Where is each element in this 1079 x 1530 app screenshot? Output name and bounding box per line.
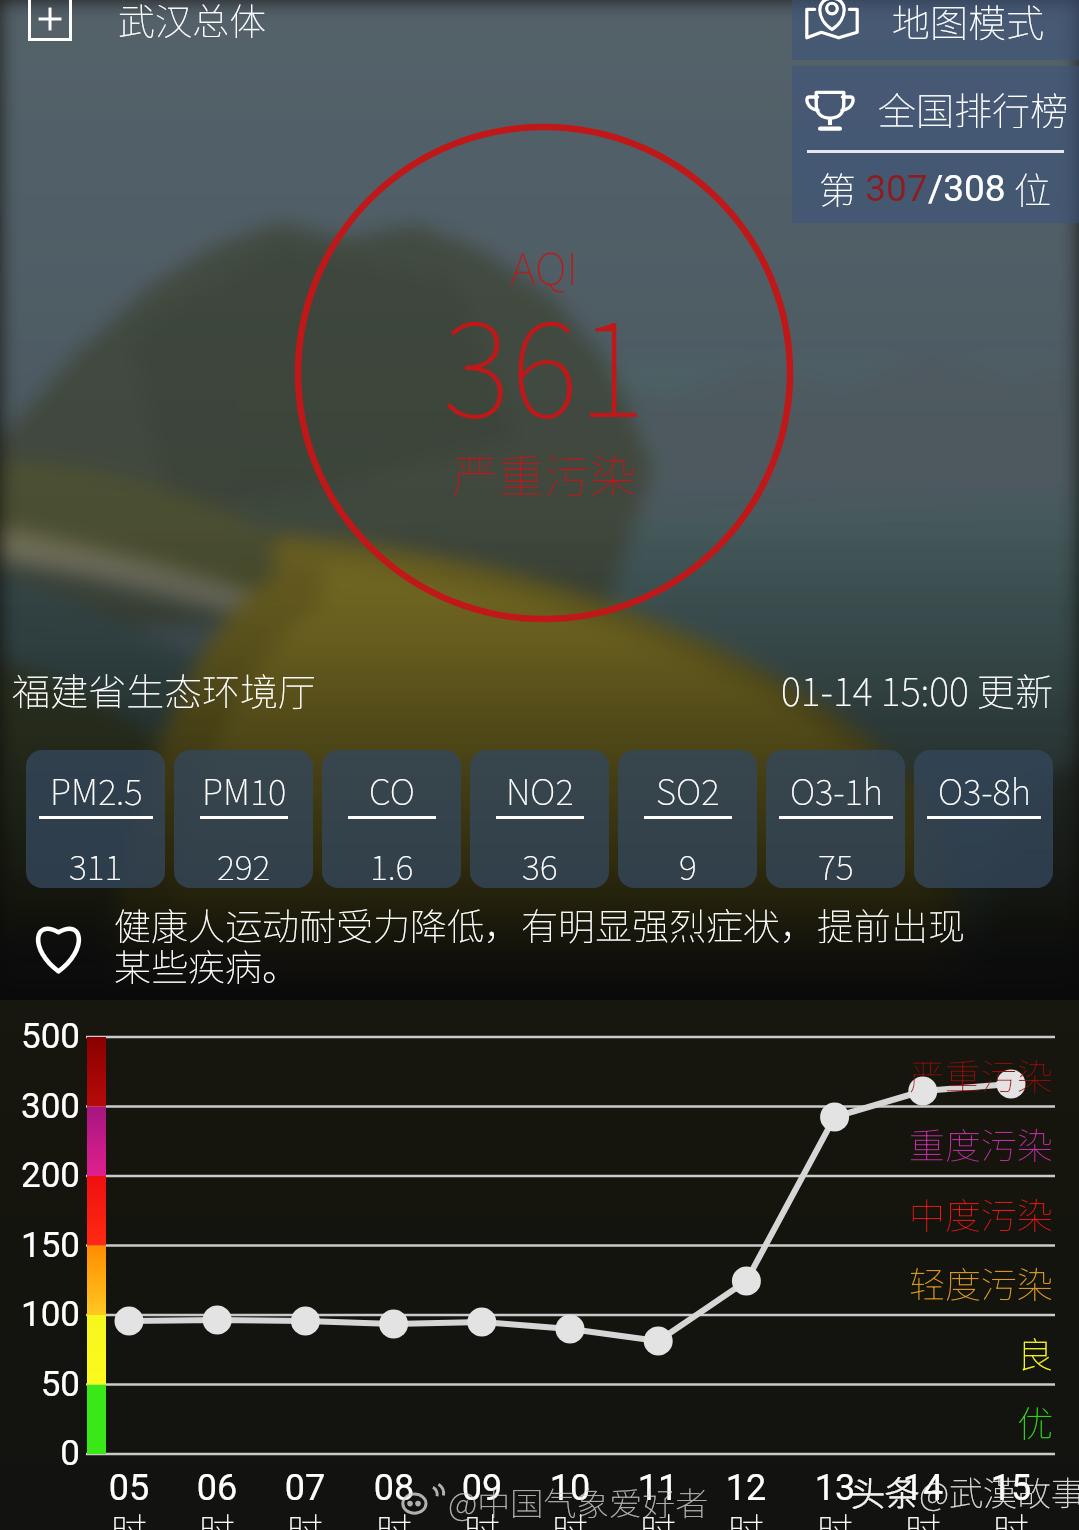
- other: Map mode: [804, 1, 860, 47]
- button[interactable]: Add city: [28, 0, 266, 48]
- staticText: 08: [350, 1467, 438, 1509]
- staticText: 中度污染: [0, 1187, 1053, 1239]
- staticText: 时: [173, 1502, 261, 1530]
- staticText: 时: [261, 1502, 349, 1530]
- staticText: 361: [295, 266, 793, 454]
- staticText: 36: [522, 841, 558, 888]
- staticText: 时: [967, 1502, 1055, 1530]
- staticText: O3-1h: [790, 764, 883, 815]
- staticText: @武漢故事: [919, 1467, 1079, 1516]
- staticText: 头条: [851, 1467, 919, 1516]
- staticText: 严重污染: [0, 1048, 1053, 1100]
- staticText: 时: [526, 1502, 614, 1530]
- staticText: 重度污染: [0, 1117, 1053, 1169]
- staticText: 福建省生态环境厅: [12, 662, 317, 717]
- staticText: CO: [369, 764, 415, 815]
- other: Add city: [28, 0, 72, 41]
- staticText: PM2.5: [50, 764, 143, 815]
- staticText: 武汉总体: [118, 0, 266, 46]
- staticText: 时: [350, 1502, 438, 1530]
- staticText: 12: [702, 1467, 790, 1509]
- staticText: O3-8h: [938, 764, 1031, 815]
- button[interactable]: CO: [322, 750, 461, 888]
- staticText: 11: [614, 1467, 702, 1509]
- staticText: 位: [1006, 161, 1052, 215]
- staticText: 01-14 15:00 更新: [781, 662, 1054, 717]
- staticText: 15: [967, 1467, 1055, 1509]
- staticText: 时: [702, 1502, 790, 1530]
- staticText: 500: [0, 1016, 80, 1057]
- staticText: 时: [85, 1502, 173, 1530]
- staticText: 时: [438, 1502, 526, 1530]
- staticText: 292: [217, 841, 271, 888]
- staticText: 时: [879, 1502, 967, 1530]
- staticText: 良: [0, 1326, 1053, 1378]
- staticText: 严重污染: [295, 440, 793, 507]
- staticText: 307: [856, 167, 928, 210]
- staticText: 地图模式: [892, 0, 1045, 48]
- staticText: 100: [0, 1294, 80, 1335]
- staticText: 05: [85, 1467, 173, 1509]
- staticText: 14: [879, 1467, 967, 1509]
- button[interactable]: O3-1h: [766, 750, 905, 888]
- staticText: 150: [0, 1225, 80, 1266]
- staticText: 75: [818, 841, 854, 888]
- button[interactable]: PM2.5: [26, 750, 165, 888]
- staticText: 06: [173, 1467, 261, 1509]
- staticText: @中国气象爱好者: [448, 1478, 709, 1526]
- staticText: /308: [928, 167, 1006, 210]
- staticText: 311: [69, 841, 123, 888]
- button[interactable]: Map mode: [792, 0, 1079, 60]
- staticText: 轻度污染: [0, 1256, 1053, 1308]
- button[interactable]: NO2: [470, 750, 609, 888]
- staticText: 07: [261, 1467, 349, 1509]
- staticText: 全国排行榜: [878, 81, 1069, 136]
- staticText: AQI: [295, 234, 793, 298]
- staticText: 0: [0, 1433, 80, 1474]
- button[interactable]: 全国排行榜: [792, 66, 1079, 223]
- staticText: 300: [0, 1086, 80, 1127]
- staticText: 时: [614, 1502, 702, 1530]
- staticText: SO2: [656, 764, 720, 815]
- staticText: PM10: [202, 764, 287, 815]
- staticText: NO2: [506, 764, 574, 815]
- staticText: 优: [0, 1395, 1053, 1447]
- staticText: 健康人运动耐受力降低，有明显强烈症状，提前出现 某些疾病。: [114, 897, 965, 992]
- staticText: 时: [791, 1502, 879, 1530]
- staticText: 9: [679, 841, 697, 888]
- staticText: 09: [438, 1467, 526, 1509]
- staticText: 13: [791, 1467, 879, 1509]
- staticText: 50: [0, 1364, 80, 1405]
- staticText: 第: [819, 161, 856, 215]
- button[interactable]: SO2: [618, 750, 757, 888]
- button[interactable]: PM10: [174, 750, 313, 888]
- button[interactable]: O3-8h: [914, 750, 1053, 888]
- staticText: 200: [0, 1155, 80, 1196]
- staticText: 10: [526, 1467, 614, 1509]
- staticText: 1.6: [370, 841, 414, 888]
